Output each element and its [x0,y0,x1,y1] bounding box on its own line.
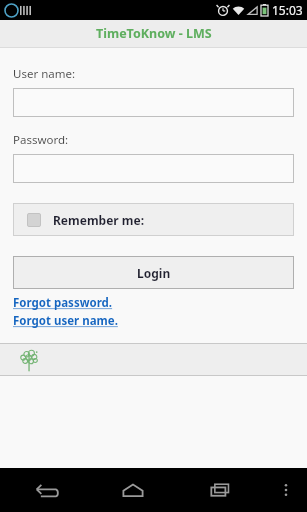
button[interactable] [13,154,294,183]
button[interactable]: Forgot password. [13,295,113,311]
button[interactable]: More options [265,468,307,512]
button[interactable]: Login [13,256,294,289]
button[interactable]: Forgot user name. [13,313,118,329]
staticText: Password: [13,132,69,148]
button[interactable]: Home [89,468,177,512]
staticText: Forgot user name. [13,313,118,329]
staticText: Remember me: [53,212,145,228]
staticText: Login [137,265,171,281]
staticText: Forgot password. [13,295,113,311]
button[interactable]: Recent apps [177,468,265,512]
button[interactable]: Back [0,468,89,512]
staticText: 15:03 [272,2,303,18]
staticText: User name: [13,66,76,82]
button[interactable]: TimeToKnow logo [18,348,42,372]
button[interactable]: Remember me: [13,203,294,236]
staticText: TimeToKnow - LMS [96,25,212,42]
button[interactable] [13,88,294,117]
